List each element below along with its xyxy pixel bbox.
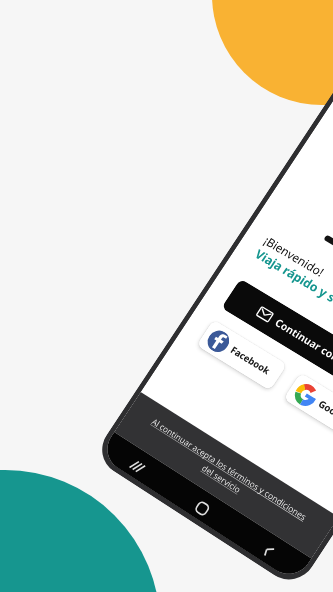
- staticText: Facebook: [228, 343, 273, 377]
- button[interactable]: Back: [228, 515, 311, 583]
- button[interactable]: Recents: [99, 432, 178, 497]
- staticText: Google: [316, 397, 333, 426]
- button[interactable]: Home: [163, 473, 244, 539]
- button[interactable]: Al continuar acepta los términos y condi…: [114, 392, 333, 559]
- button[interactable]: Continuar con Email: [221, 279, 333, 408]
- button[interactable]: Facebook: [196, 319, 287, 391]
- staticText: Continuar con Email: [272, 315, 333, 381]
- button[interactable]: Google: [283, 373, 333, 446]
- staticText: Viaja rápido y seguro: [252, 246, 333, 324]
- staticText: Al continuar acepta los términos y condi…: [142, 416, 309, 534]
- staticText: ¡Bienvenido!: [261, 232, 328, 280]
